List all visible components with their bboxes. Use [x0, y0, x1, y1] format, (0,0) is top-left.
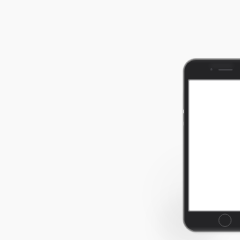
button[interactable]: Phone display — [189, 80, 240, 210]
button[interactable]: Home button — [217, 212, 233, 228]
